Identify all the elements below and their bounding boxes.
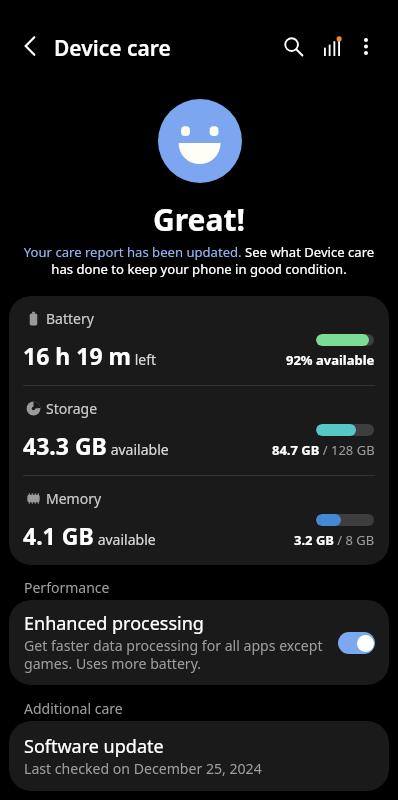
staticText: Performance	[24, 578, 110, 597]
staticText: available	[94, 530, 156, 549]
staticText: available	[107, 440, 169, 459]
staticText: 92% available	[286, 351, 375, 369]
staticText: Software update	[24, 734, 164, 759]
staticText: left	[131, 350, 157, 369]
staticText: Get faster data processing for all apps …	[24, 636, 337, 673]
staticText: 84.7 GB / 128 GB	[272, 441, 375, 459]
button[interactable]: Diagnostics	[310, 24, 354, 68]
staticText: Last checked on December 25, 2024	[24, 759, 262, 778]
staticText: Device care	[54, 34, 171, 63]
staticText: Your care report has been updated. See w…	[21, 243, 377, 278]
button[interactable]: Battery	[9, 296, 389, 385]
staticText: 4.1 GB	[23, 520, 94, 551]
staticText: 43.3 GB	[23, 430, 107, 461]
staticText: Memory	[46, 489, 102, 508]
staticText: Great!	[0, 199, 398, 240]
staticText: 3.2 GB / 8 GB	[294, 531, 375, 549]
button[interactable]: Memory	[9, 476, 389, 565]
button[interactable]: Software update	[9, 721, 389, 791]
button[interactable]: Search	[271, 24, 315, 68]
button[interactable]: More options	[344, 24, 388, 68]
button[interactable]: Enhanced processing, on	[338, 632, 375, 654]
staticText: Enhanced processing	[24, 611, 204, 636]
staticText: Battery	[46, 309, 94, 328]
button[interactable]: Storage	[9, 386, 389, 475]
staticText: 16 h 19 m	[23, 340, 131, 371]
staticText: Additional care	[24, 699, 123, 718]
button[interactable]: Enhanced processing	[9, 600, 389, 685]
staticText: Storage	[46, 399, 98, 418]
button[interactable]: Navigate up	[8, 24, 52, 68]
